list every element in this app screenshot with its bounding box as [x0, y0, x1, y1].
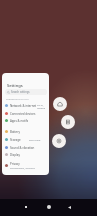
button[interactable]: Privacy — [2, 162, 49, 169]
staticText: Display — [10, 153, 20, 157]
staticText: Network & internet — [10, 104, 37, 108]
staticText: 85% used — [29, 138, 41, 141]
button[interactable]: Settings — [52, 134, 66, 148]
staticText: Suggestions for you — [6, 97, 29, 100]
button[interactable]: Search settings — [5, 89, 47, 95]
staticText: Wi-Fi, mobile — [37, 103, 49, 109]
staticText: Apps & notifs — [10, 119, 29, 123]
staticText: Permissions, account — [10, 166, 35, 169]
staticText: Storage — [10, 138, 21, 142]
staticText: Settings — [7, 83, 23, 88]
button[interactable]: Battery — [2, 128, 49, 135]
button[interactable]: Home — [53, 97, 67, 111]
staticText: Privacy — [10, 162, 20, 166]
button[interactable]: Recents — [22, 203, 30, 211]
staticText: Sound & vibration — [10, 146, 35, 150]
button[interactable]: Network & internet — [2, 102, 49, 109]
button[interactable]: Back — [65, 203, 73, 211]
button[interactable]: Apps & notifs — [2, 117, 49, 124]
button[interactable]: Home — [45, 203, 53, 211]
staticText: Search settings — [11, 90, 30, 94]
button[interactable]: Apps — [61, 115, 75, 129]
button[interactable]: Sound & vibration — [2, 144, 49, 151]
staticText: Battery — [10, 130, 20, 134]
button[interactable]: Storage — [2, 136, 49, 143]
button[interactable]: Connected devices — [2, 110, 49, 117]
button[interactable]: Display — [2, 151, 49, 158]
staticText: Connected devices — [10, 112, 36, 116]
